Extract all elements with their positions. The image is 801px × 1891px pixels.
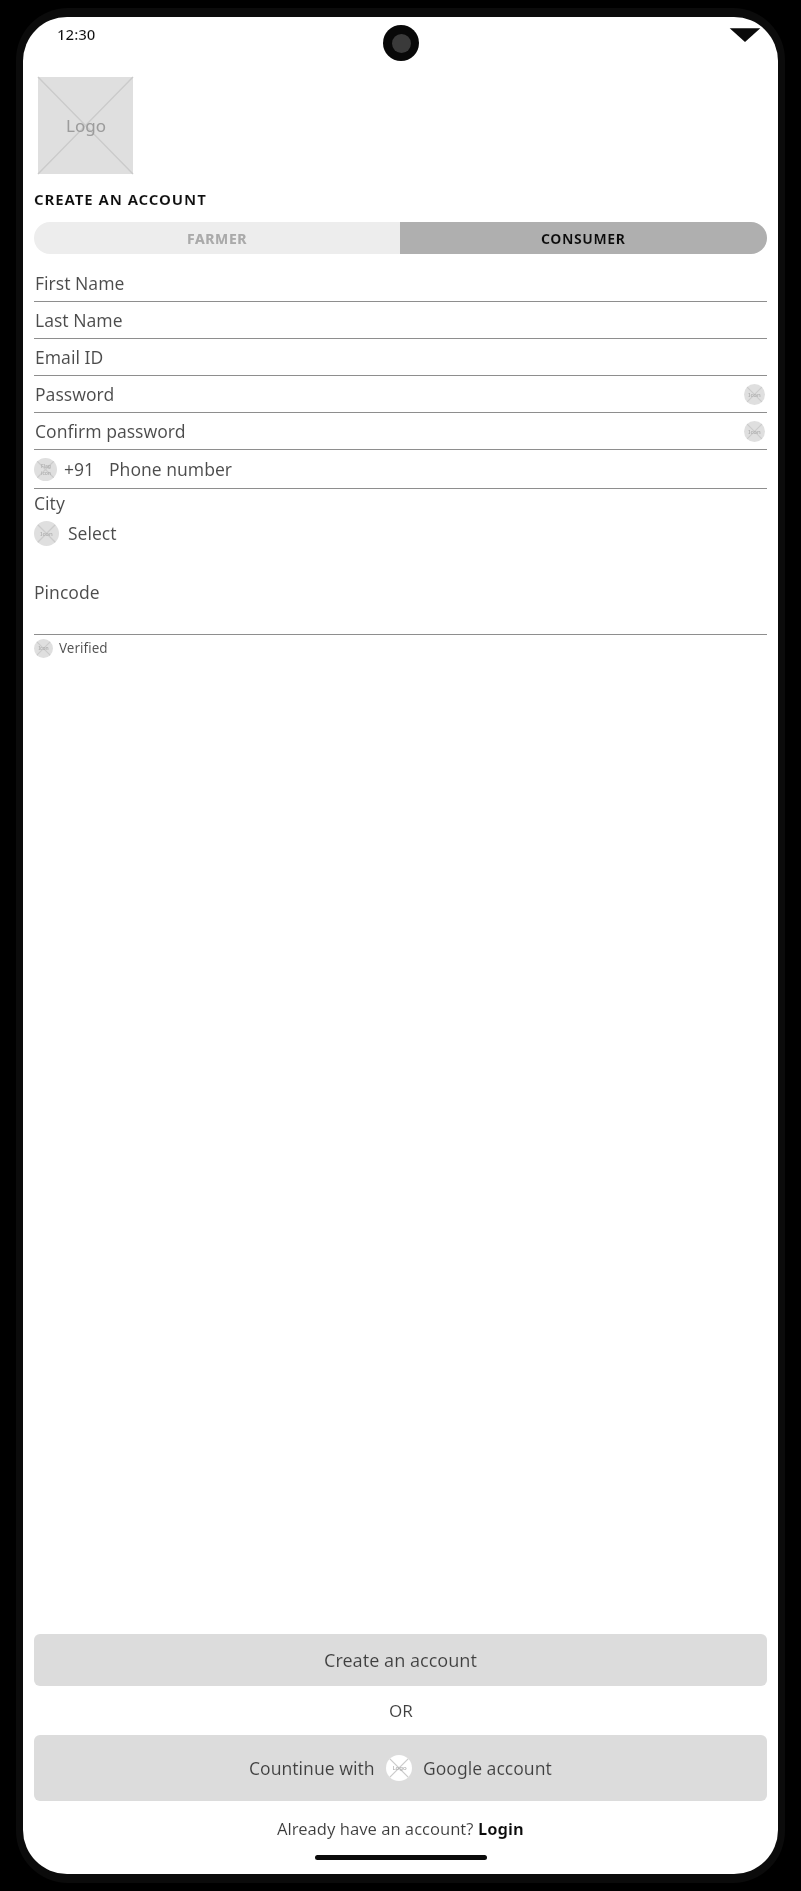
staticText: Password [35, 382, 115, 406]
button[interactable]: Toggle password visibility [744, 421, 765, 442]
button[interactable]: FARMER [34, 222, 400, 254]
staticText: CREATE AN ACCOUNT [34, 189, 207, 209]
staticText: CONSUMER [541, 229, 626, 248]
staticText: Confirm password [35, 419, 186, 443]
staticText: City [34, 491, 65, 515]
button[interactable]: Logo [38, 77, 133, 174]
staticText: 12:30 [57, 24, 96, 44]
button[interactable]: Password [34, 376, 767, 413]
button[interactable]: Verified [34, 635, 767, 661]
staticText: Icon [748, 428, 761, 436]
staticText: Select [68, 521, 117, 545]
button[interactable]: Pincode [34, 550, 767, 635]
button[interactable]: Email ID [34, 339, 767, 376]
staticText: OR [389, 1699, 413, 1722]
staticText: Create an account [324, 1648, 477, 1673]
staticText: Logo [66, 114, 106, 137]
button[interactable]: Create an account [34, 1634, 767, 1686]
staticText: Last Name [35, 308, 123, 332]
staticText: Icon [748, 391, 761, 399]
button[interactable]: Select city [34, 521, 59, 546]
staticText: Google account [423, 1756, 552, 1780]
staticText: Logo [392, 1764, 407, 1772]
button[interactable]: CONSUMER [400, 222, 767, 254]
staticText: FARMER [187, 229, 248, 248]
button[interactable]: Countinue with [34, 1735, 767, 1801]
staticText: Already have an account? [277, 1817, 478, 1839]
staticText: Login [478, 1817, 524, 1839]
staticText: Countinue with [249, 1756, 375, 1780]
button[interactable]: Confirm password [34, 413, 767, 450]
button[interactable]: First Name [34, 265, 767, 302]
button[interactable]: Select city [34, 516, 767, 550]
button[interactable]: Last Name [34, 302, 767, 339]
button[interactable]: Verified [34, 639, 53, 658]
button[interactable]: Toggle password visibility [744, 384, 765, 405]
staticText: Icon [40, 530, 53, 538]
staticText: First Name [35, 271, 125, 295]
button[interactable]: Country flag [34, 458, 57, 481]
staticText: Pincode [34, 580, 100, 604]
staticText: Phone number [109, 457, 233, 481]
staticText: +91 [64, 457, 95, 481]
staticText: Icon [38, 645, 49, 652]
staticText: Flag icon [41, 463, 51, 476]
button[interactable]: Country flag [34, 450, 767, 489]
button[interactable]: Already have an account? [277, 1817, 524, 1839]
staticText: Verified [59, 639, 108, 657]
staticText: Email ID [35, 345, 104, 369]
button[interactable]: Google logo [386, 1755, 412, 1781]
